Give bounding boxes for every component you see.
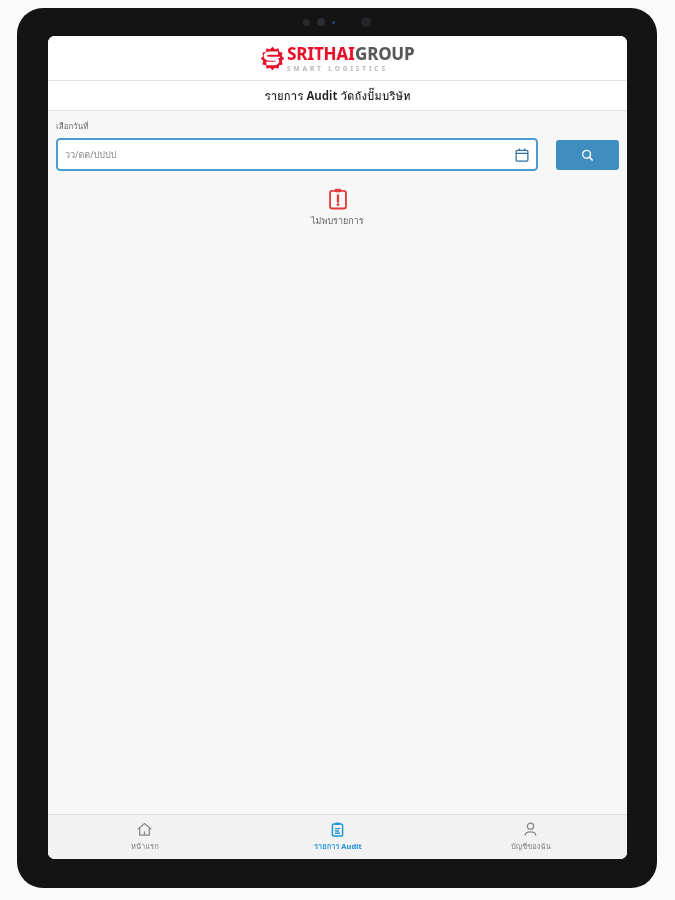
staticText: เลือกวันที่ [56, 120, 89, 133]
staticText: รายการ Audit [314, 840, 362, 852]
button[interactable]: Search [556, 140, 619, 170]
button[interactable]: บัญชีของฉัน [434, 818, 627, 856]
staticText: S M A R T L O G I S T I C S [287, 64, 386, 73]
other: Calendar [515, 148, 529, 162]
button[interactable]: รายการ Audit [241, 818, 434, 856]
staticText: หน้าแรก [131, 840, 159, 852]
staticText: GROUP [355, 42, 415, 65]
staticText: SRITHAI [287, 42, 355, 65]
button[interactable]: หน้าแรก [48, 818, 241, 856]
staticText: ไม่พบรายการ [311, 214, 364, 228]
staticText: วว/ดด/ปปปป [65, 148, 515, 162]
button[interactable]: วว/ดด/ปปปป [56, 138, 538, 171]
staticText: บัญชีของฉัน [511, 840, 551, 852]
staticText: รายการ Audit วัดถังปั๊มบริษัท [264, 87, 411, 105]
